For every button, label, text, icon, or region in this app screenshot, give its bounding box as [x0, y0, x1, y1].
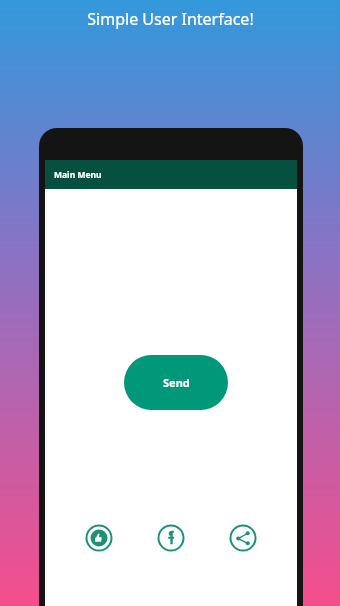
- button[interactable]: Send: [124, 355, 228, 410]
- staticText: Simple User Interface!: [87, 8, 254, 30]
- button[interactable]: Facebook: [157, 524, 185, 552]
- button[interactable]: Main Menu: [45, 160, 297, 189]
- button[interactable]: Like: [85, 524, 113, 552]
- staticText: Send: [163, 375, 190, 390]
- button[interactable]: Share: [229, 524, 257, 552]
- staticText: Main Menu: [54, 169, 102, 181]
